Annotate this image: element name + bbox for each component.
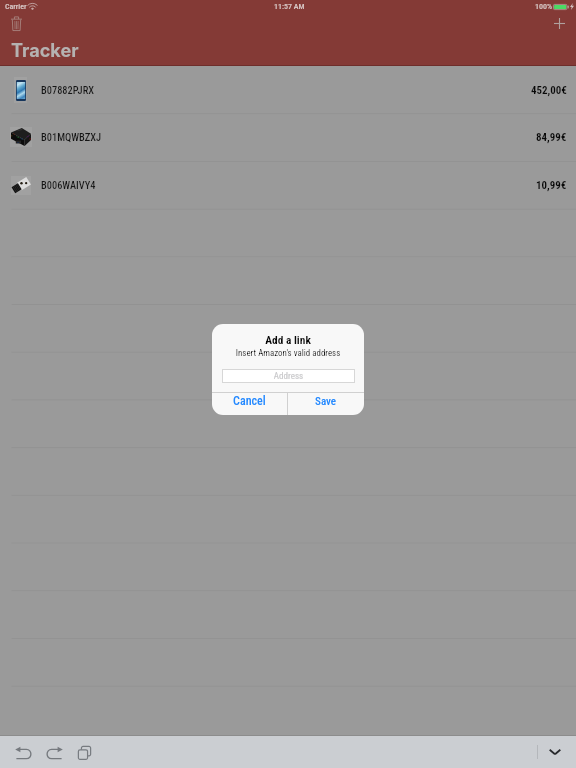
staticText: 10,99€: [536, 179, 567, 192]
button[interactable]: Save: [288, 393, 364, 415]
staticText: B07882PJRX: [41, 84, 95, 96]
staticText: B006WAIVY4: [41, 179, 96, 191]
button[interactable]: Cancel: [212, 393, 287, 415]
button[interactable]: Undo: [14, 744, 34, 761]
button[interactable]: B07882PJRX: [0, 66, 576, 114]
staticText: 11:57 AM: [274, 2, 305, 11]
button[interactable]: Delete all: [11, 16, 22, 31]
staticText: Carrier: [5, 2, 27, 11]
staticText: B01MQWBZXJ: [41, 131, 102, 143]
staticText: Tracker: [11, 39, 79, 61]
button[interactable]: Address: [222, 369, 355, 383]
button[interactable]: B01MQWBZXJ: [0, 113, 576, 161]
staticText: Insert Amazon's valid address: [212, 348, 364, 358]
staticText: 84,99€: [536, 131, 567, 144]
staticText: Add a link: [212, 333, 364, 346]
button[interactable]: Copy: [76, 744, 93, 761]
button[interactable]: Add link: [554, 18, 565, 29]
staticText: Address: [223, 371, 354, 382]
staticText: Cancel: [233, 394, 266, 408]
staticText: 100%: [535, 2, 553, 11]
staticText: 452,00€: [531, 84, 567, 97]
staticText: Save: [315, 395, 337, 408]
button[interactable]: Hide keyboard: [548, 745, 562, 759]
button[interactable]: B006WAIVY4: [0, 161, 576, 209]
button[interactable]: Redo: [44, 744, 64, 761]
